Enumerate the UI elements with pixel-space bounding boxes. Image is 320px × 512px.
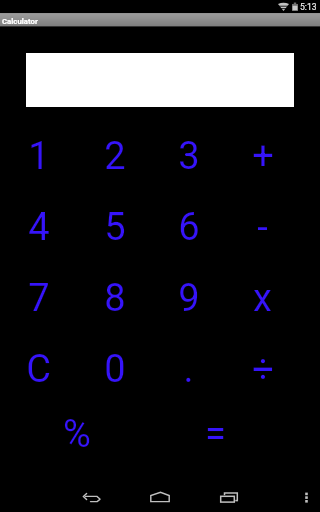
button[interactable]: Home xyxy=(142,483,179,509)
button[interactable]: - xyxy=(225,192,300,263)
staticText: 6 xyxy=(178,205,200,250)
button[interactable]: = xyxy=(178,402,253,467)
staticText: 1 xyxy=(28,134,50,179)
button[interactable]: 8 xyxy=(75,263,150,334)
button[interactable]: 0 xyxy=(75,334,150,405)
button[interactable]: 6 xyxy=(150,192,225,263)
staticText: 4 xyxy=(28,205,50,250)
staticText: + xyxy=(252,134,274,179)
staticText: 5:13 xyxy=(300,2,317,12)
staticText: 3 xyxy=(178,134,200,179)
button[interactable]: C xyxy=(0,334,75,405)
button[interactable]: ÷ xyxy=(225,334,300,405)
button[interactable]: 7 xyxy=(0,263,75,334)
button[interactable]: Back xyxy=(74,483,111,509)
other: Battery xyxy=(292,2,298,11)
button[interactable]: Calculator xyxy=(0,13,320,27)
staticText: 9 xyxy=(178,276,200,321)
button[interactable]: Recent apps xyxy=(210,483,247,509)
staticText: 2 xyxy=(104,134,126,179)
button[interactable]: 1 xyxy=(0,121,75,192)
button[interactable]: 3 xyxy=(150,121,225,192)
staticText: - xyxy=(257,205,268,250)
button[interactable]: 4 xyxy=(0,192,75,263)
staticText: Calculator xyxy=(2,17,38,26)
staticText: % xyxy=(63,412,91,457)
button[interactable]: + xyxy=(225,121,300,192)
staticText: 5 xyxy=(104,205,126,250)
staticText: 7 xyxy=(28,276,50,321)
button[interactable]: x xyxy=(225,263,300,334)
other: Wi-Fi signal xyxy=(278,3,289,11)
staticText: x xyxy=(253,276,272,321)
button[interactable]: . xyxy=(150,334,225,405)
staticText: 0 xyxy=(104,347,126,392)
staticText: ÷ xyxy=(252,347,274,392)
button[interactable]: More options xyxy=(296,483,318,509)
button[interactable]: 2 xyxy=(75,121,150,192)
button[interactable]: 9 xyxy=(150,263,225,334)
staticText: C xyxy=(26,347,51,392)
button[interactable]: 5 xyxy=(75,192,150,263)
staticText: = xyxy=(205,412,226,457)
staticText: . xyxy=(183,347,194,392)
staticText: 8 xyxy=(104,276,126,321)
button[interactable]: % xyxy=(40,402,115,467)
